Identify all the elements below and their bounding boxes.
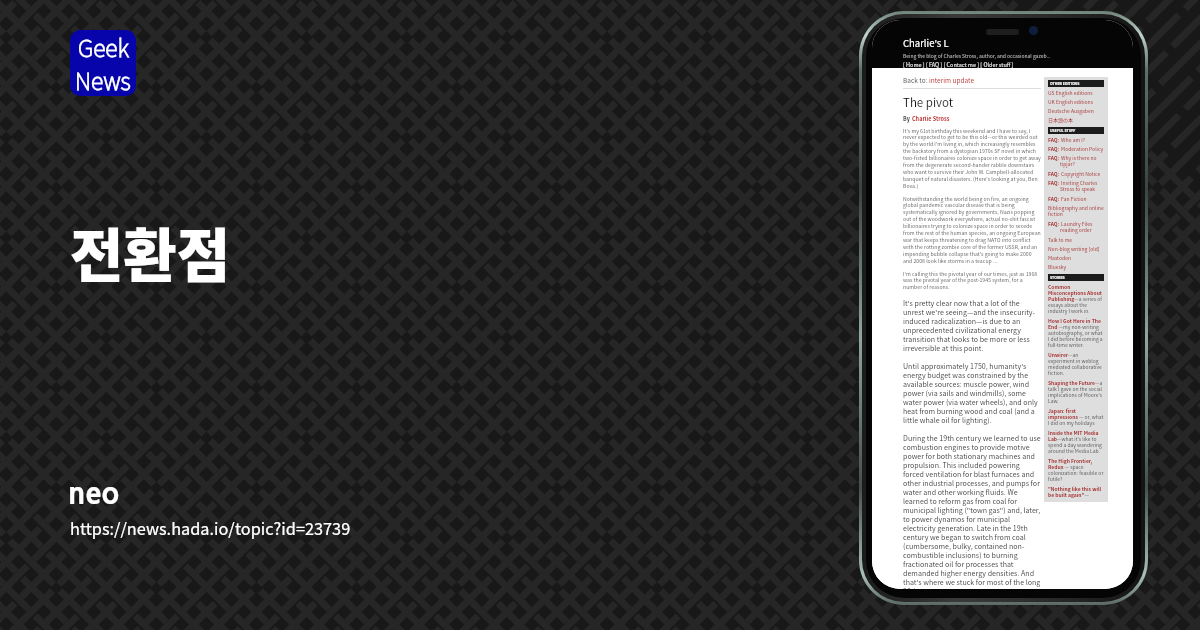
staticText: FAQ: [1048,195,1060,202]
button[interactable]: Japan: first impressions — or, what I di… [1048,407,1104,427]
staticText: Laundry Files reading order [1060,220,1104,234]
staticText: FAQ: [1048,145,1060,152]
button[interactable]: How I Got Here in The End —my non-writin… [1048,317,1104,349]
button[interactable]: 日本語の本 [1048,116,1074,123]
button[interactable]: FAQ: [1048,220,1104,234]
staticText: interim update [929,75,975,84]
staticText: https://news.hada.io/topic?id=23739 [70,516,351,540]
button[interactable]: Unwirer—an experiment in weblog mediated… [1048,351,1104,377]
button[interactable]: FAQ: [1048,136,1086,143]
staticText: Charlie Stross [912,115,950,123]
button[interactable]: FAQ: [1048,179,1104,193]
button[interactable]: Deutsche Ausgaben [1048,107,1094,114]
button[interactable]: Bibliography and online fiction [1048,204,1104,218]
staticText: FAQ: [1048,170,1060,177]
staticText: Back to: [903,75,929,84]
staticText: Inviting Charles Stross to speak [1060,179,1104,193]
staticText: STORIES [1050,275,1065,280]
staticText: During the 19th century we learned to us… [903,433,1041,589]
staticText: It's pretty clear now that a lot of the … [903,298,1041,353]
staticText: By [903,115,912,123]
button[interactable]: FAQ: [1048,154,1104,168]
button[interactable]: Talk to me [1048,236,1073,243]
button[interactable]: "Nothing like this will be built again"— [1048,485,1104,499]
staticText: FAQ: [1048,220,1060,227]
button[interactable]: FAQ: [1048,145,1104,152]
button[interactable]: GeekNews logo [70,30,136,96]
button[interactable]: Shaping the Future—a talk I gave on the … [1048,379,1104,405]
button[interactable]: FAQ: [1048,195,1087,202]
staticText: FAQ: [1048,136,1060,143]
staticText: neo [68,479,119,508]
button[interactable]: Inside the MIT Media Lab—what it's like … [1048,429,1104,455]
staticText: It's my 61st birthday this weekend and I… [903,127,1041,190]
staticText: Copyright Notice [1060,170,1101,177]
staticText: The pivot [903,94,954,111]
staticText: FAQ: [1048,179,1060,186]
button[interactable]: Mastodon [1048,254,1072,261]
staticText: [ Home ] [ FAQ ] [ Contact me ] [ Older … [903,61,1014,68]
staticText: Why is there no tipjar? [1060,154,1104,168]
staticText: Geek [78,30,129,63]
button[interactable]: Common Misconceptions About Publishing—a… [1048,283,1104,315]
button[interactable]: US English editions [1048,89,1093,96]
staticText: Notwithstanding the world being on fire,… [903,195,1041,265]
button[interactable]: UK English editions [1048,98,1093,105]
button[interactable]: FAQ: [1048,170,1101,177]
staticText: News [75,63,131,96]
button[interactable]: The High Frontier, Redux — space coloniz… [1048,457,1104,483]
staticText: 전환점 [70,210,231,294]
staticText: Moderation Policy [1060,145,1104,152]
staticText: Until approximately 1750, humanity's ene… [903,361,1041,425]
staticText: FAQ: [1048,154,1060,161]
button[interactable]: Bluesky [1048,263,1067,270]
staticText: OTHER EDITIONS [1050,81,1080,86]
staticText: I'm calling this the pivotal year of our… [903,270,1041,291]
staticText: Charlie's L [903,36,949,50]
button[interactable]: Non-blog writing [old] [1048,245,1100,252]
staticText: Fan Fiction [1060,195,1087,202]
staticText: USEFUL STUFF [1050,128,1076,133]
staticText: Who am I? [1060,136,1086,143]
staticText: Being the blog of Charles Stross, author… [903,52,1051,59]
